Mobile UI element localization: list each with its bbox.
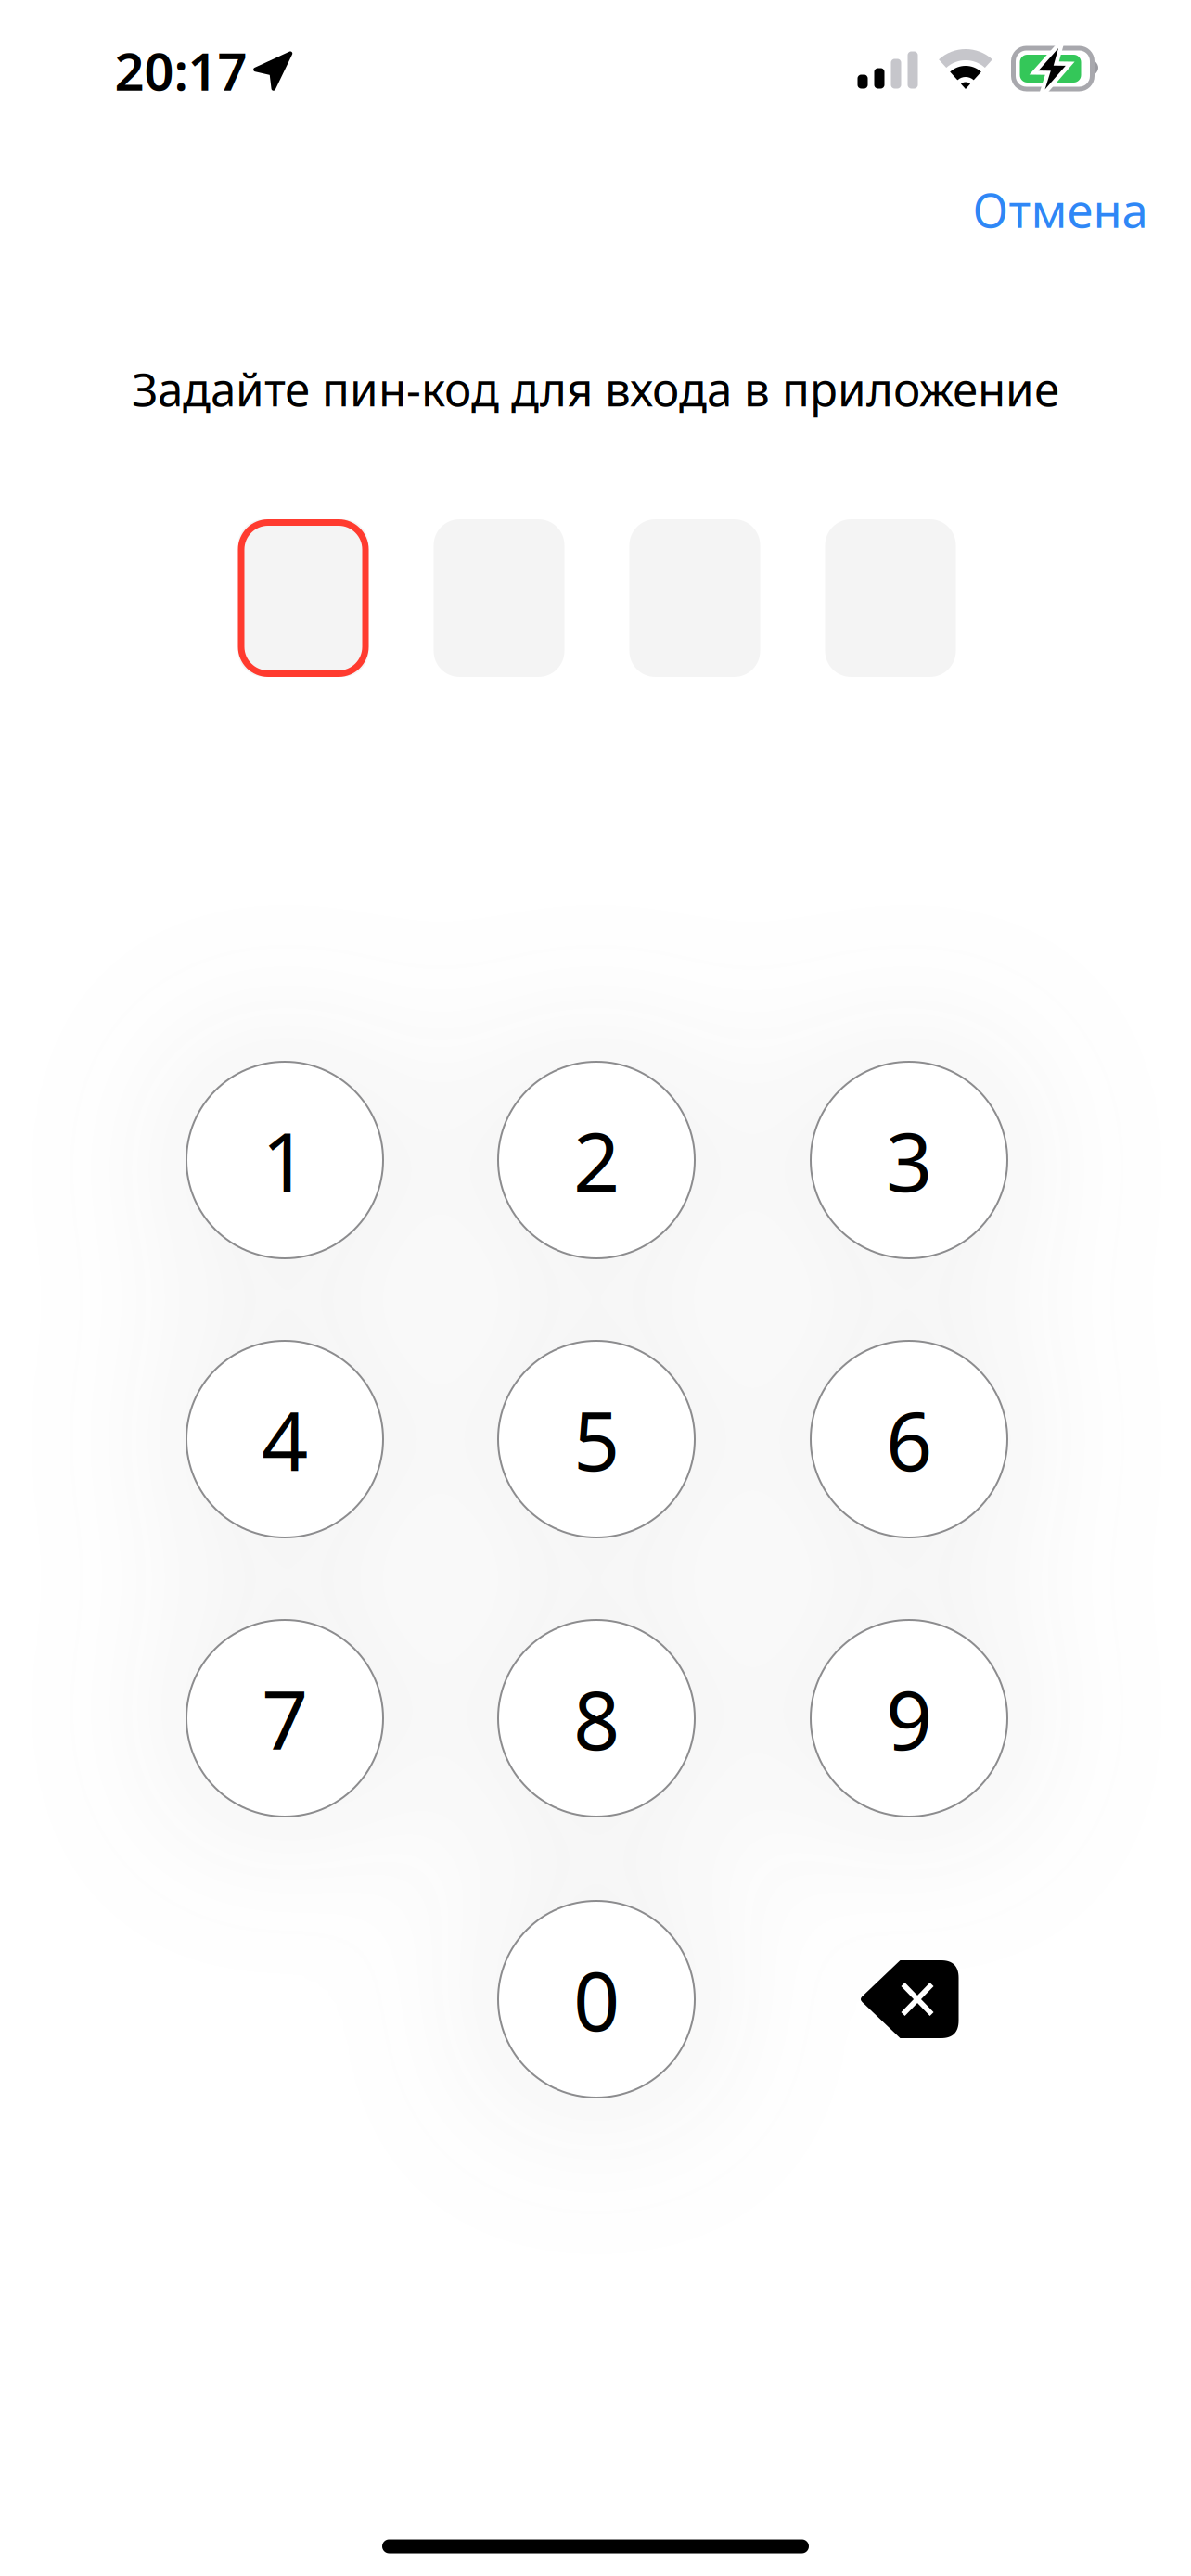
button[interactable]: Delete: [859, 1960, 959, 2038]
button[interactable]: 3: [811, 1062, 1007, 1258]
staticText: 1: [262, 1106, 308, 1214]
button[interactable]: 1: [186, 1062, 383, 1258]
staticText: 5: [573, 1385, 620, 1493]
staticText: 9: [886, 1664, 932, 1773]
staticText: 0: [573, 1945, 620, 2053]
button[interactable]: 0: [498, 1901, 695, 2098]
button[interactable]: 7: [186, 1620, 383, 1817]
staticText: 3: [886, 1106, 932, 1214]
staticText: 8: [573, 1664, 620, 1773]
button[interactable]: 5: [498, 1341, 695, 1537]
button[interactable]: 8: [498, 1620, 695, 1817]
staticText: 20:17: [115, 36, 247, 105]
staticText: Отмена: [973, 178, 1148, 241]
staticText: 2: [573, 1106, 620, 1214]
button[interactable]: 9: [811, 1620, 1007, 1817]
button[interactable]: 4: [186, 1341, 383, 1537]
staticText: 4: [262, 1385, 308, 1493]
button[interactable]: 6: [811, 1341, 1007, 1537]
button[interactable]: 2: [498, 1062, 695, 1258]
staticText: Задайте пин-код для входа в приложение: [132, 358, 1059, 419]
button[interactable]: Отмена: [948, 158, 1172, 261]
staticText: 6: [886, 1385, 932, 1493]
staticText: 7: [262, 1664, 308, 1773]
